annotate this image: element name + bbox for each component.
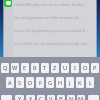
button[interactable]: Messages	[4, 0, 12, 7]
staticText: B	[59, 95, 63, 100]
staticText: O	[83, 64, 88, 72]
staticText: Hallo! Mir geht für sie in zirkus. Da di…	[14, 2, 100, 7]
staticText: Q	[3, 64, 8, 72]
staticText: I	[74, 64, 76, 72]
button[interactable]: M	[77, 95, 85, 100]
button[interactable]: O	[81, 63, 89, 73]
staticText: K	[78, 79, 82, 87]
button[interactable]: Q	[1, 63, 9, 73]
button[interactable]: P	[91, 63, 99, 73]
staticText: E	[23, 64, 27, 72]
button[interactable]: A	[6, 77, 14, 88]
button[interactable]: R	[31, 63, 39, 73]
button[interactable]: X	[26, 95, 35, 100]
button[interactable]: N	[67, 95, 75, 100]
button[interactable]: C	[37, 95, 45, 100]
staticText: R	[33, 64, 37, 72]
staticText: L	[89, 79, 92, 87]
staticText: Z	[53, 64, 57, 72]
staticText: U	[63, 64, 68, 72]
staticText: A	[8, 79, 12, 87]
button[interactable]: V	[47, 95, 55, 100]
staticText: S	[18, 79, 22, 87]
button[interactable]: U	[61, 63, 69, 73]
button[interactable]	[88, 95, 99, 100]
staticText: Y	[18, 95, 22, 100]
button[interactable]: D	[26, 77, 34, 88]
staticText: D	[28, 79, 33, 87]
staticText: Öç mel gippand: am liberal passieft...	[14, 15, 100, 20]
button[interactable]: T	[41, 63, 49, 73]
button[interactable]: F	[36, 77, 44, 88]
staticText: H	[58, 79, 63, 87]
staticText: Jesus. Un folgenden g und nel numal d...	[14, 28, 100, 33]
staticText: T	[43, 64, 47, 72]
button[interactable]: H	[56, 77, 64, 88]
staticText: W	[12, 64, 18, 72]
staticText: G	[48, 79, 53, 87]
staticText: M	[78, 95, 84, 100]
staticText: F	[39, 79, 42, 87]
staticText: C	[39, 95, 43, 100]
button[interactable]: G	[46, 77, 54, 88]
button[interactable]: Y	[15, 95, 24, 100]
staticText: X	[29, 95, 33, 100]
button[interactable]: E	[21, 63, 29, 73]
button[interactable]: W	[11, 63, 19, 73]
staticText: N	[69, 95, 74, 100]
button[interactable]: I	[71, 63, 79, 73]
staticText: J	[69, 79, 71, 87]
button[interactable]: K	[76, 77, 84, 88]
button[interactable]	[1, 95, 12, 100]
staticText: P	[93, 64, 97, 72]
button[interactable]: B	[57, 95, 65, 100]
staticText: hir mieel l har du sowrtig frei kriegt: …	[14, 41, 100, 46]
button[interactable]: J	[66, 77, 74, 88]
staticText: V	[49, 95, 53, 100]
button[interactable]: L	[86, 77, 94, 88]
button[interactable]: Z	[51, 63, 59, 73]
button[interactable]: S	[16, 77, 24, 88]
